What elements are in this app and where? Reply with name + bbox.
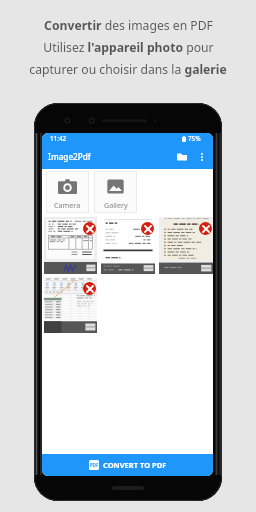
button[interactable]: Delete page [159, 217, 213, 274]
button[interactable]: Delete page [83, 282, 96, 295]
staticText: PDF [90, 462, 99, 468]
button[interactable]: Open folder [173, 148, 190, 165]
button[interactable]: More options [194, 149, 209, 164]
staticText: Convertir des images en PDF [44, 17, 213, 34]
button[interactable]: Delete page [83, 222, 96, 235]
button[interactable]: Gallery [94, 171, 137, 213]
button[interactable]: Delete page [101, 217, 155, 274]
staticText: capturer ou choisir dans la galerie [29, 61, 227, 78]
staticText: Utilisez l'appareil photo pour [43, 39, 214, 56]
button[interactable]: Delete page [199, 222, 212, 235]
button[interactable]: Delete page [44, 217, 97, 274]
staticText: Image2Pdf [48, 151, 91, 162]
staticText: CONVERT TO PDF [103, 460, 167, 470]
button[interactable]: Camera [46, 171, 89, 213]
staticText: Gallery [104, 200, 128, 210]
staticText: 11:42 [50, 134, 67, 143]
button[interactable]: Delete page [44, 277, 97, 333]
button[interactable]: Delete page [141, 222, 154, 235]
button[interactable]: PDF [42, 454, 213, 476]
staticText: 75% [188, 134, 201, 143]
staticText: Camera [54, 200, 81, 210]
